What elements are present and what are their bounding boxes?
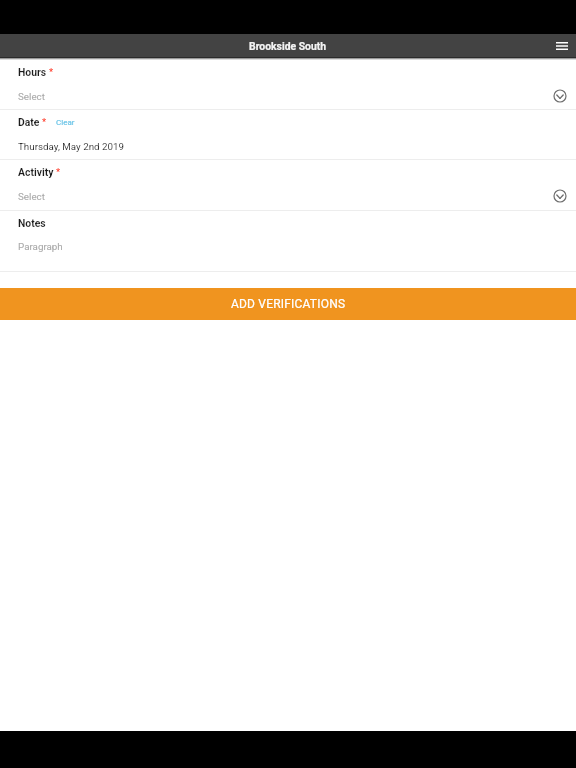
staticText: Hours [18, 66, 47, 78]
staticText: Clear [56, 118, 75, 127]
staticText: Brookside South [249, 40, 327, 52]
staticText: * [42, 117, 47, 128]
button[interactable]: Clear [55, 118, 76, 127]
button[interactable]: Select [0, 184, 576, 208]
button[interactable]: Select [0, 84, 576, 108]
button[interactable]: Thursday, May 2nd 2019 [0, 134, 576, 158]
staticText: Date [18, 116, 40, 128]
staticText: ADD VERIFICATIONS [231, 297, 346, 311]
staticText: * [49, 67, 54, 78]
button[interactable]: Paragraph [0, 234, 576, 258]
staticText: Select [18, 91, 45, 102]
staticText: Paragraph [18, 241, 63, 252]
button[interactable]: Open navigation menu [554, 38, 570, 54]
staticText: Select [18, 191, 45, 202]
staticText: Thursday, May 2nd 2019 [18, 141, 125, 152]
staticText: * [56, 167, 61, 178]
button[interactable]: ADD VERIFICATIONS [0, 288, 576, 320]
staticText: Activity [18, 166, 54, 178]
staticText: Notes [18, 217, 46, 229]
